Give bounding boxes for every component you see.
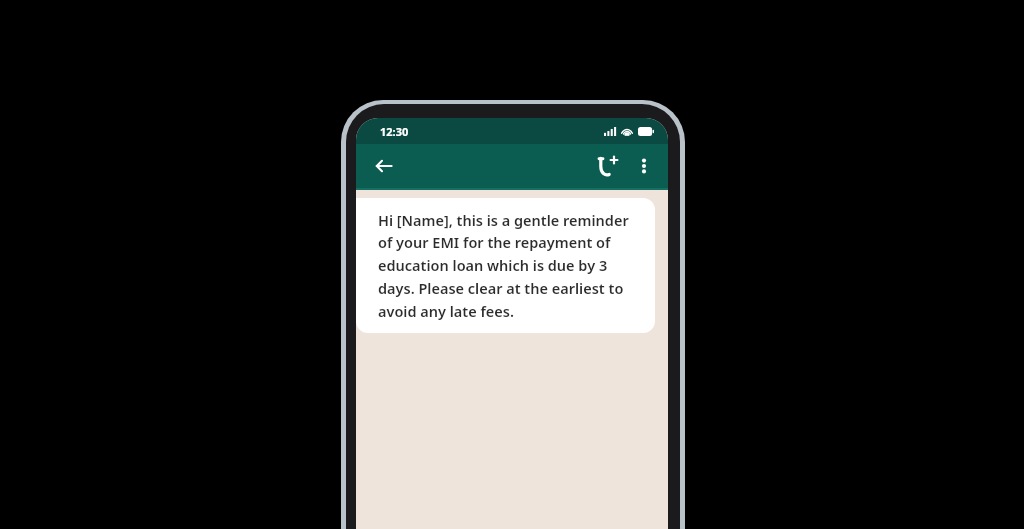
button[interactable]: Add call: [590, 148, 626, 184]
staticText: Hi [Name], this is a gentle reminder of …: [378, 210, 641, 321]
staticText: 12:30: [380, 124, 409, 139]
button[interactable]: Back: [366, 148, 402, 184]
button[interactable]: More options: [626, 148, 662, 184]
button[interactable]: Hi [Name], this is a gentle reminder of …: [356, 198, 655, 333]
